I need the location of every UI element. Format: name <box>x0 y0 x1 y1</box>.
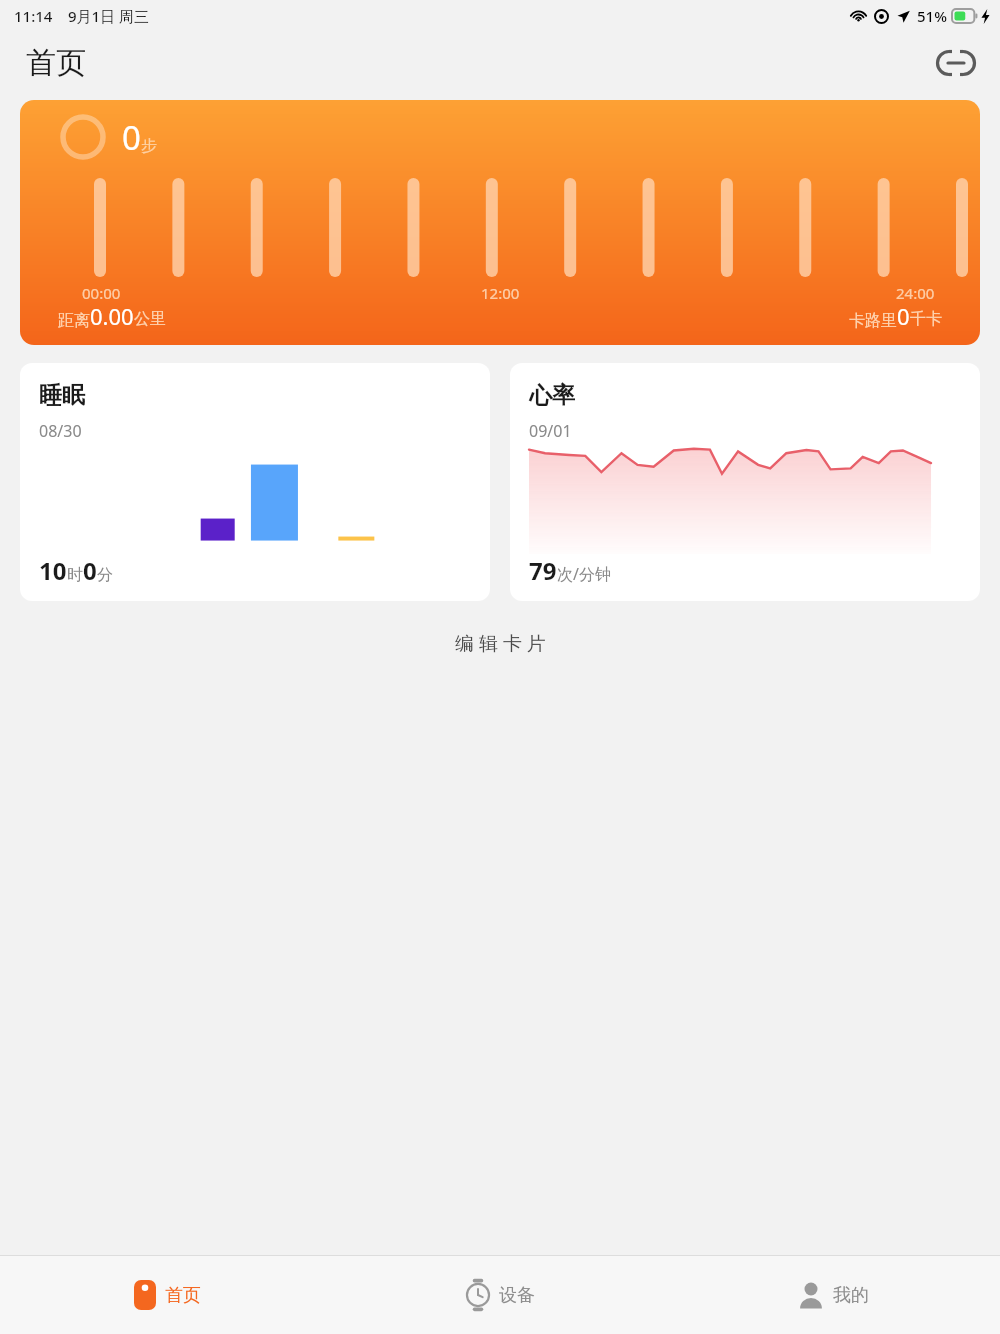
staticText: 我的 <box>833 1284 869 1307</box>
button[interactable]: 睡眠 <box>20 363 490 601</box>
staticText: 24:00 <box>896 283 935 303</box>
staticText: 51% <box>917 6 947 26</box>
staticText: 千卡 <box>910 309 942 329</box>
button[interactable]: 编 辑 卡 片 <box>0 621 1000 665</box>
button[interactable]: 0 <box>20 100 980 345</box>
staticText: 00:00 <box>82 283 121 303</box>
staticText: 距离 <box>58 311 90 331</box>
staticText: 步 <box>141 136 157 156</box>
staticText: 09/01 <box>529 420 572 442</box>
staticText: 12:00 <box>481 283 520 303</box>
staticText: 设备 <box>499 1284 535 1307</box>
staticText: 编 辑 卡 片 <box>455 630 546 656</box>
staticText: 11:14 9月1日 周三 <box>14 6 150 26</box>
button[interactable]: 设备 <box>334 1256 667 1334</box>
staticText: 睡眠 <box>39 381 85 410</box>
staticText: 79 <box>529 554 557 587</box>
staticText: 心率 <box>529 381 575 410</box>
staticText: 公里 <box>134 309 166 329</box>
staticText: 0 <box>83 554 97 587</box>
staticText: 首页 <box>26 44 86 82</box>
staticText: 10 <box>39 554 67 587</box>
staticText: 次/分钟 <box>557 563 611 585</box>
staticText: 分 <box>97 565 113 585</box>
button[interactable]: 我的 <box>667 1256 1000 1334</box>
button[interactable]: 心率 <box>510 363 980 601</box>
staticText: 0.00 <box>90 301 134 331</box>
staticText: 08/30 <box>39 420 82 442</box>
staticText: 首页 <box>165 1284 201 1307</box>
button[interactable]: 首页 <box>0 1256 334 1334</box>
staticText: 0 <box>897 301 910 331</box>
staticText: 卡路里 <box>849 311 897 331</box>
button[interactable]: Link device <box>932 39 980 87</box>
staticText: 0 <box>122 115 141 160</box>
staticText: 时 <box>67 565 83 585</box>
